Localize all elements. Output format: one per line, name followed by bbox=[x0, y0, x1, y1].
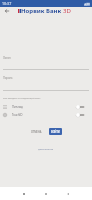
button[interactable]: Home bbox=[42, 190, 50, 198]
staticText: Пин-код bbox=[12, 105, 23, 109]
button[interactable]: Back bbox=[0, 6, 13, 16]
staticText: Демо-версия bbox=[38, 147, 54, 150]
button[interactable]: Toggle TouchID bbox=[76, 113, 85, 117]
button[interactable]: TouchID bbox=[3, 111, 89, 118]
button[interactable]: ОТМЕНА bbox=[29, 128, 44, 135]
staticText: Норвик Банк bbox=[21, 7, 62, 15]
staticText: ОТМЕНА bbox=[31, 130, 42, 133]
button[interactable]: Пин-код bbox=[3, 103, 89, 110]
staticText: 3D bbox=[63, 7, 71, 15]
button[interactable]: ВОЙТИ bbox=[49, 128, 62, 135]
staticText: Пароль bbox=[3, 76, 13, 80]
button[interactable]: Toggle Пин-код bbox=[76, 105, 85, 109]
button[interactable]: Демо-версия bbox=[37, 146, 55, 151]
staticText: 10:37 bbox=[2, 1, 12, 6]
button[interactable]: Back bbox=[64, 190, 72, 198]
staticText: ВОЙТИ bbox=[51, 130, 60, 133]
staticText: Как входить в следующий раз? bbox=[3, 96, 41, 99]
staticText: TouchID bbox=[12, 113, 23, 117]
button[interactable]: Recents bbox=[20, 190, 28, 198]
staticText: Логин bbox=[3, 56, 11, 60]
staticText: ▲▮▮ bbox=[84, 2, 90, 6]
